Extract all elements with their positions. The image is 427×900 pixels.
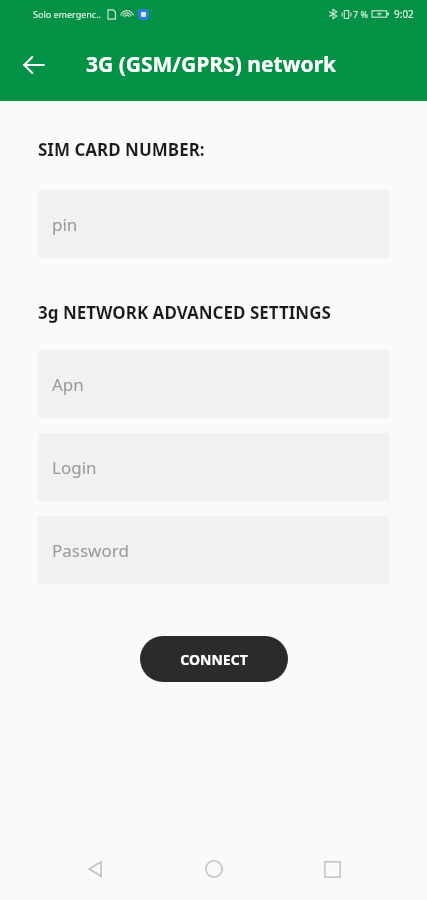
button[interactable]: Back bbox=[13, 44, 55, 86]
button[interactable]: Recent apps bbox=[308, 845, 356, 893]
staticText: Password bbox=[52, 539, 129, 562]
staticText: SIM CARD NUMBER: bbox=[38, 138, 411, 161]
staticText: 7 % bbox=[353, 8, 368, 20]
staticText: Login bbox=[52, 456, 97, 479]
staticText: 9:02 bbox=[394, 7, 414, 21]
button[interactable]: Login bbox=[38, 433, 389, 501]
staticText: 3G (GSM/GPRS) network bbox=[86, 50, 337, 79]
staticText: Apn bbox=[52, 373, 84, 396]
staticText: Solo emergenc.. bbox=[33, 8, 102, 20]
button[interactable]: Apn bbox=[38, 350, 389, 418]
staticText: 3g NETWORK ADVANCED SETTINGS bbox=[38, 301, 411, 324]
staticText: pin bbox=[52, 213, 78, 236]
staticText: CONNECT bbox=[180, 650, 248, 669]
button[interactable]: Home bbox=[190, 845, 238, 893]
button[interactable]: CONNECT bbox=[140, 636, 288, 682]
button[interactable]: Password bbox=[38, 516, 389, 584]
button[interactable]: Back bbox=[71, 845, 119, 893]
button[interactable]: pin bbox=[38, 190, 389, 258]
